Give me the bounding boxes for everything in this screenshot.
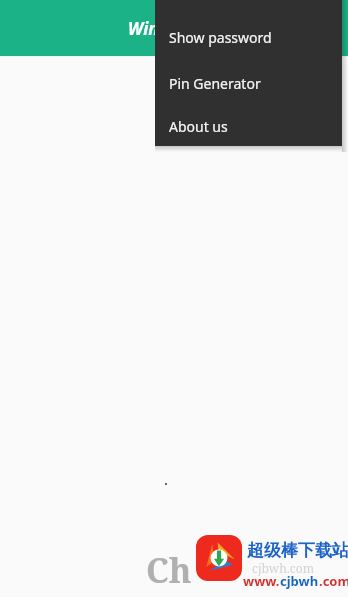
staticText: www. (243, 572, 280, 590)
staticText: WinPass (128, 17, 196, 40)
staticText: cjbwh.com (252, 560, 315, 576)
staticText: Pin Generator (169, 74, 261, 93)
button[interactable]: Pin Generator (155, 60, 342, 106)
staticText: .com (319, 572, 348, 590)
button[interactable]: Show password (155, 0, 342, 60)
staticText: About us (169, 117, 228, 136)
staticText: Show password (169, 28, 272, 47)
staticText: Ch (146, 547, 192, 593)
staticText: cjbwh (280, 572, 319, 590)
button[interactable]: About us (155, 106, 342, 146)
staticText: 超级棒下载站 (247, 540, 348, 561)
